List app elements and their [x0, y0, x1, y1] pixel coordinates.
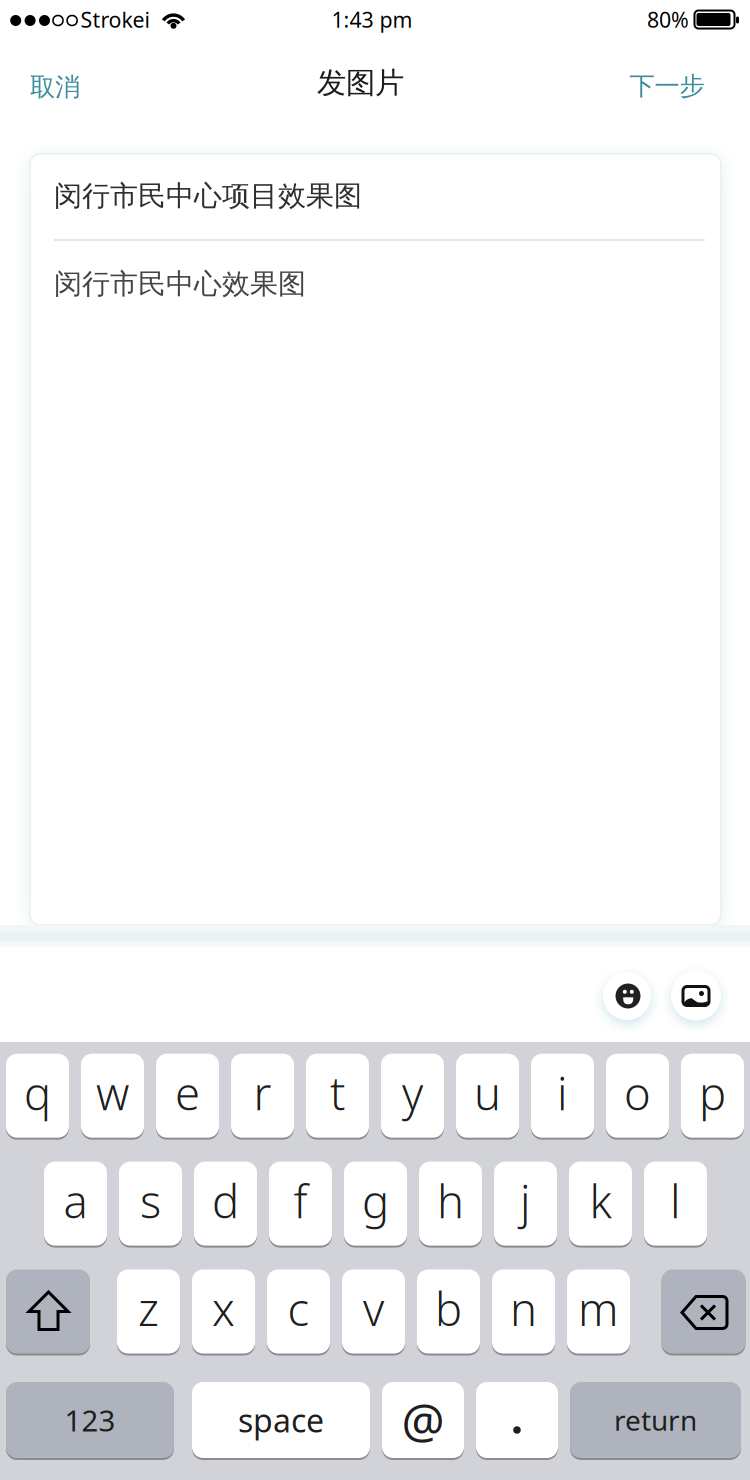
staticText: k [589, 1170, 611, 1231]
staticText: p [699, 1063, 726, 1123]
button[interactable]: s [119, 1161, 182, 1247]
staticText: u [474, 1063, 501, 1123]
staticText: o [624, 1063, 651, 1123]
button[interactable]: 取消 [12, 61, 98, 113]
button[interactable]: j [494, 1161, 557, 1247]
button[interactable]: k [569, 1161, 632, 1247]
button[interactable] [671, 970, 721, 1020]
staticText: x [212, 1278, 235, 1339]
button[interactable] [476, 1381, 558, 1459]
button[interactable]: e [156, 1053, 219, 1139]
staticText: f [293, 1170, 307, 1231]
staticText: z [138, 1278, 159, 1339]
button[interactable]: w [81, 1053, 144, 1139]
staticText: 下一步 [629, 70, 704, 101]
staticText: h [437, 1170, 464, 1231]
staticText: q [24, 1063, 51, 1123]
staticText: j [520, 1170, 531, 1231]
staticText: 闵行市民中心效果图 [54, 267, 306, 301]
staticText: i [557, 1063, 568, 1123]
staticText: @ [401, 1388, 444, 1452]
button[interactable]: space [192, 1381, 370, 1459]
button[interactable]: o [606, 1053, 669, 1139]
staticText: 发图片 [317, 65, 404, 101]
button[interactable]: a [44, 1161, 107, 1247]
button[interactable] [6, 1268, 90, 1354]
staticText: a [63, 1170, 87, 1231]
staticText: s [140, 1170, 161, 1231]
staticText: 取消 [30, 71, 80, 102]
button[interactable]: d [194, 1161, 257, 1247]
button[interactable]: t [306, 1053, 369, 1139]
staticText: space [238, 1399, 324, 1441]
button[interactable]: y [381, 1053, 444, 1139]
staticText: b [435, 1278, 462, 1339]
button[interactable]: i [531, 1053, 594, 1139]
button[interactable]: x [192, 1268, 255, 1354]
button[interactable]: c [267, 1268, 330, 1354]
staticText: 闵行市民中心项目效果图 [54, 179, 362, 213]
button[interactable] [661, 1268, 745, 1354]
button[interactable] [603, 972, 651, 1020]
button[interactable]: z [117, 1268, 180, 1354]
button[interactable]: g [344, 1161, 407, 1247]
button[interactable]: f [269, 1161, 332, 1247]
staticText: y [402, 1063, 423, 1123]
staticText: 1:43 pm [331, 5, 412, 34]
button[interactable]: u [456, 1053, 519, 1139]
staticText: Strokei [80, 5, 150, 34]
staticText: d [212, 1170, 239, 1231]
staticText: n [510, 1278, 537, 1339]
button[interactable]: v [342, 1268, 405, 1354]
staticText: 80% [647, 5, 689, 34]
button[interactable]: 123 [6, 1381, 174, 1459]
button[interactable]: n [492, 1268, 555, 1354]
staticText: l [670, 1170, 681, 1231]
staticText: t [330, 1063, 345, 1123]
staticText: c [287, 1278, 309, 1339]
button[interactable]: l [644, 1161, 707, 1247]
button[interactable]: b [417, 1268, 480, 1354]
button[interactable]: 下一步 [614, 60, 720, 112]
staticText: g [362, 1170, 389, 1231]
staticText: v [363, 1278, 384, 1339]
button[interactable]: p [681, 1053, 744, 1139]
staticText: 123 [64, 1400, 115, 1439]
button[interactable]: r [231, 1053, 294, 1139]
staticText: m [578, 1278, 619, 1339]
staticText: e [175, 1063, 200, 1123]
staticText: w [96, 1063, 129, 1123]
staticText: return [614, 1401, 697, 1439]
button[interactable]: @ [382, 1381, 464, 1459]
button[interactable]: m [567, 1268, 630, 1354]
staticText: r [253, 1063, 271, 1123]
button[interactable]: h [419, 1161, 482, 1247]
button[interactable]: return [570, 1381, 741, 1459]
button[interactable]: q [6, 1053, 69, 1139]
